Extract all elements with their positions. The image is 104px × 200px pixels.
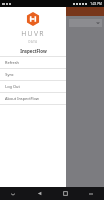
staticText: 1:23 PM: [90, 2, 102, 6]
staticText: HUVR: [21, 29, 45, 39]
button[interactable]: About InspectFlow: [0, 93, 66, 104]
staticText: InspectFlow: [20, 48, 47, 54]
staticText: Sync: [5, 72, 14, 77]
staticText: About InspectFlow: [5, 96, 39, 101]
button[interactable]: Refresh: [0, 57, 66, 68]
staticText: Refresh: [5, 60, 19, 65]
other: HUVR logo: [26, 12, 40, 26]
button[interactable]: Home: [52, 187, 78, 200]
staticText: DATA: [28, 40, 38, 44]
button[interactable]: Back: [26, 187, 52, 200]
button[interactable]: Hide keyboard: [0, 187, 26, 200]
other: Open dropdown: [96, 21, 100, 25]
button[interactable]: Open dropdown: [69, 19, 102, 27]
button[interactable]: Sync: [0, 69, 66, 80]
staticText: Log Out: [5, 84, 20, 89]
button[interactable]: Recent apps: [78, 187, 104, 200]
button[interactable]: Log Out: [0, 81, 66, 92]
